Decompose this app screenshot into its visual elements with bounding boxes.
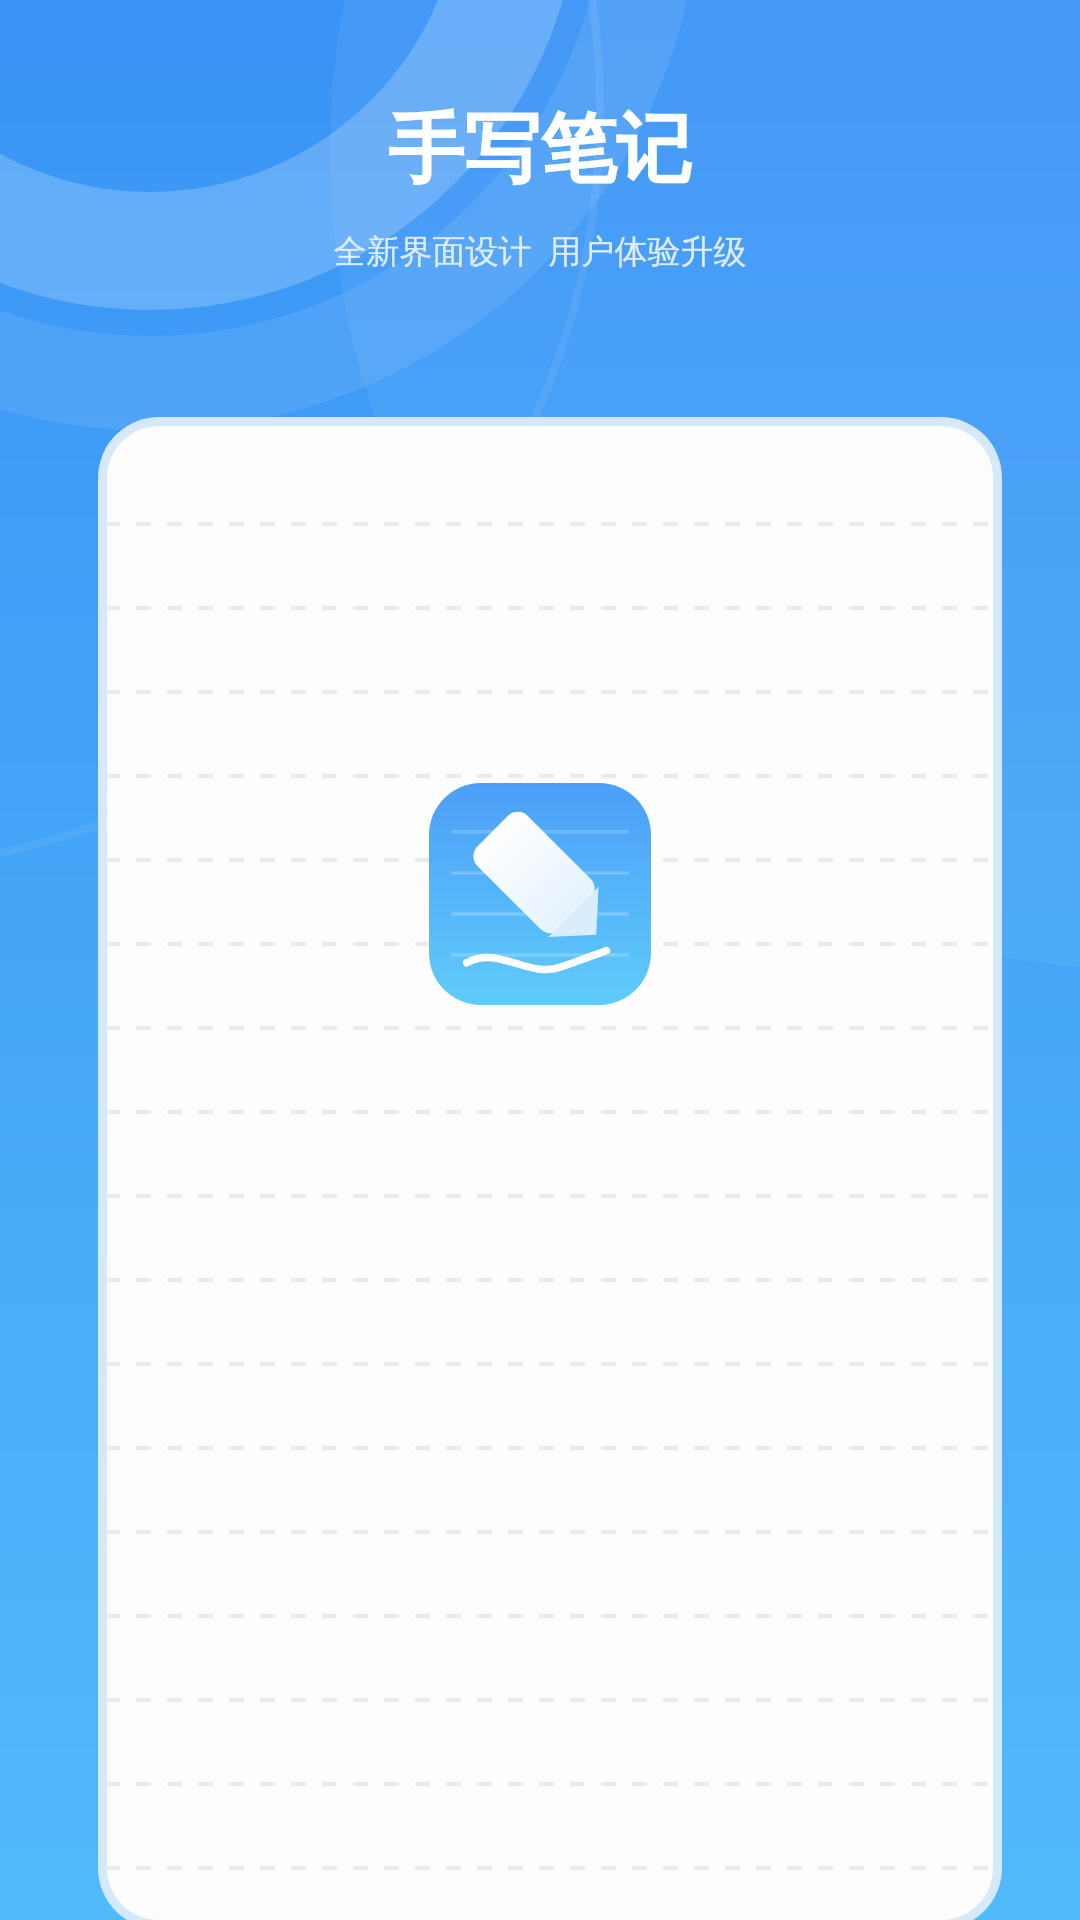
staticText: 全新界面设计 用户体验升级	[333, 228, 747, 273]
button[interactable]: Handwriting note canvas	[0, 0, 1080, 1920]
staticText: 手写笔记	[388, 102, 692, 198]
